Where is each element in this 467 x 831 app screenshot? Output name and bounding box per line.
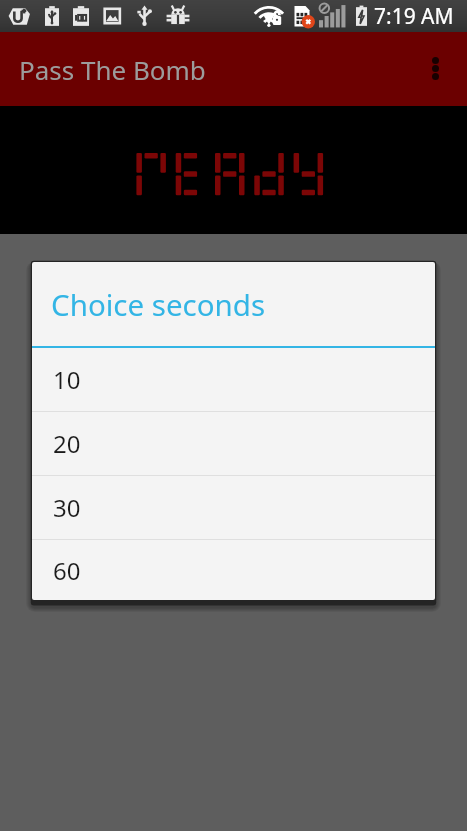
staticText: Pass The Bomb xyxy=(19,52,206,87)
staticText: 7:19 AM xyxy=(374,2,454,31)
button[interactable]: 10 xyxy=(32,348,435,411)
button[interactable]: 60 xyxy=(32,540,435,600)
staticText: 10 xyxy=(53,363,81,396)
staticText: Choice seconds xyxy=(51,284,266,324)
staticText: 60 xyxy=(53,554,81,587)
button[interactable]: 20 xyxy=(32,412,435,475)
staticText: 20 xyxy=(53,427,81,460)
staticText: 30 xyxy=(53,491,81,524)
button[interactable]: 30 xyxy=(32,476,435,539)
button[interactable]: More options xyxy=(419,32,467,106)
